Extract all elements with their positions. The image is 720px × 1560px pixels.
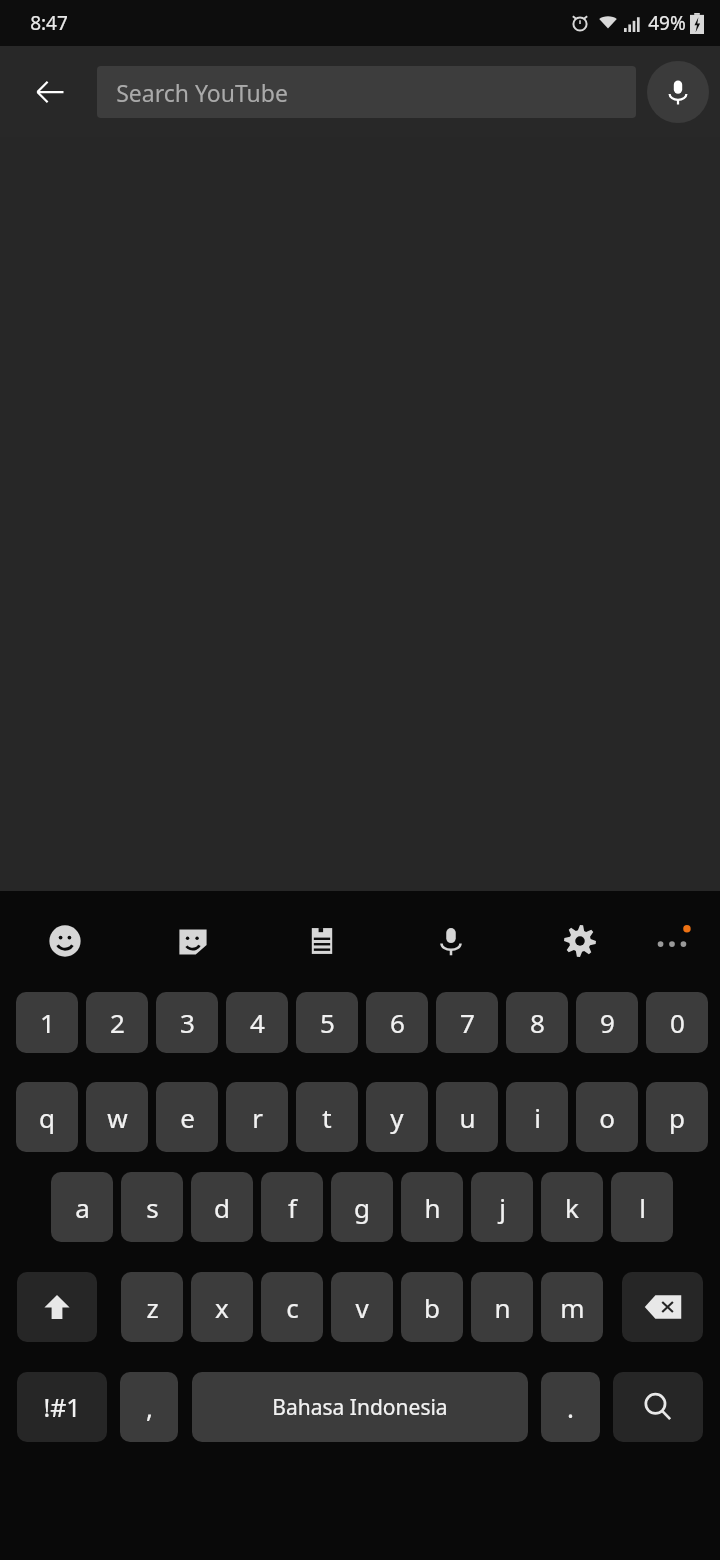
button[interactable]: 3	[156, 992, 218, 1053]
staticText: 8:47	[30, 10, 68, 36]
staticText: c	[286, 1290, 299, 1325]
staticText: l	[639, 1190, 646, 1225]
button[interactable]: 5	[296, 992, 358, 1053]
button[interactable]: w	[86, 1082, 148, 1152]
button[interactable]: .	[541, 1372, 600, 1442]
staticText: 7	[460, 1005, 475, 1040]
staticText: 49%	[648, 10, 686, 36]
button[interactable]: h	[401, 1172, 463, 1242]
staticText: z	[146, 1290, 159, 1325]
staticText: e	[180, 1100, 195, 1135]
button[interactable]: Emoji	[37, 913, 93, 969]
staticText: x	[215, 1290, 229, 1325]
button[interactable]: Search YouTube	[97, 66, 636, 118]
button[interactable]: Stickers	[165, 913, 221, 969]
staticText: m	[560, 1290, 585, 1325]
staticText: Search YouTube	[116, 77, 288, 108]
button[interactable]: i	[506, 1082, 568, 1152]
staticText: j	[499, 1190, 506, 1225]
button[interactable]: 9	[576, 992, 638, 1053]
staticText: ,	[146, 1390, 153, 1425]
button[interactable]: Shift	[17, 1272, 97, 1342]
button[interactable]: Settings	[552, 913, 608, 969]
button[interactable]: Backspace	[622, 1272, 703, 1342]
button[interactable]: Voice input	[423, 913, 479, 969]
button[interactable]: ,	[120, 1372, 178, 1442]
staticText: 6	[390, 1005, 405, 1040]
button[interactable]: p	[646, 1082, 708, 1152]
button[interactable]: g	[331, 1172, 393, 1242]
button[interactable]: a	[51, 1172, 113, 1242]
staticText: 8	[530, 1005, 545, 1040]
staticText: 5	[320, 1005, 335, 1040]
staticText: a	[75, 1190, 90, 1225]
staticText: p	[669, 1100, 685, 1135]
staticText: b	[424, 1290, 440, 1325]
button[interactable]: l	[611, 1172, 673, 1242]
button[interactable]: Voice search	[647, 61, 709, 123]
button[interactable]: 7	[436, 992, 498, 1053]
staticText: o	[599, 1100, 615, 1135]
staticText: r	[252, 1100, 263, 1135]
button[interactable]: e	[156, 1082, 218, 1152]
button[interactable]: r	[226, 1082, 288, 1152]
staticText: 0	[670, 1005, 685, 1040]
button[interactable]: q	[16, 1082, 78, 1152]
staticText: k	[565, 1190, 579, 1225]
button[interactable]: c	[261, 1272, 323, 1342]
staticText: h	[424, 1190, 441, 1225]
button[interactable]: 0	[646, 992, 708, 1053]
staticText: g	[354, 1190, 370, 1225]
button[interactable]: Search	[613, 1372, 703, 1442]
staticText: 3	[180, 1005, 195, 1040]
button[interactable]: t	[296, 1082, 358, 1152]
button[interactable]: v	[331, 1272, 393, 1342]
button[interactable]: Back	[22, 64, 78, 120]
button[interactable]: o	[576, 1082, 638, 1152]
staticText: 4	[250, 1005, 265, 1040]
button[interactable]: More options	[644, 913, 700, 969]
button[interactable]: s	[121, 1172, 183, 1242]
button[interactable]: 8	[506, 992, 568, 1053]
staticText: d	[214, 1190, 230, 1225]
staticText: i	[534, 1100, 541, 1135]
button[interactable]: f	[261, 1172, 323, 1242]
staticText: v	[355, 1290, 369, 1325]
staticText: q	[39, 1100, 55, 1135]
button[interactable]: j	[471, 1172, 533, 1242]
button[interactable]: z	[121, 1272, 183, 1342]
button[interactable]: Clipboard	[294, 913, 350, 969]
button[interactable]: m	[541, 1272, 603, 1342]
staticText: n	[494, 1290, 511, 1325]
button[interactable]: !#1	[17, 1372, 107, 1442]
button[interactable]: k	[541, 1172, 603, 1242]
button[interactable]: y	[366, 1082, 428, 1152]
staticText: Bahasa Indonesia	[272, 1393, 448, 1422]
staticText: 2	[110, 1005, 125, 1040]
staticText: f	[288, 1190, 297, 1225]
button[interactable]: 6	[366, 992, 428, 1053]
staticText: !#1	[43, 1390, 81, 1424]
staticText: .	[567, 1390, 574, 1425]
button[interactable]: Bahasa Indonesia	[192, 1372, 528, 1442]
staticText: w	[107, 1100, 128, 1135]
button[interactable]: d	[191, 1172, 253, 1242]
button[interactable]: 2	[86, 992, 148, 1053]
button[interactable]: 4	[226, 992, 288, 1053]
staticText: s	[146, 1190, 159, 1225]
staticText: t	[322, 1100, 332, 1135]
button[interactable]: n	[471, 1272, 533, 1342]
staticText: u	[459, 1100, 476, 1135]
button[interactable]: b	[401, 1272, 463, 1342]
button[interactable]: x	[191, 1272, 253, 1342]
button[interactable]: u	[436, 1082, 498, 1152]
staticText: 9	[600, 1005, 615, 1040]
staticText: 1	[40, 1005, 55, 1040]
button[interactable]: 1	[16, 992, 78, 1053]
staticText: y	[390, 1100, 404, 1135]
